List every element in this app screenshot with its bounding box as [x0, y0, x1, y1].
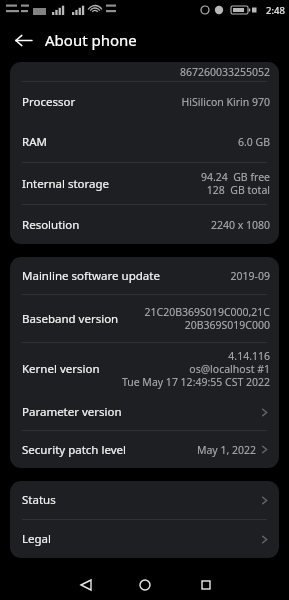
- button[interactable]: Kernel version: [10, 343, 279, 394]
- button[interactable]: Back: [73, 572, 99, 598]
- staticText: 94.24 GB free 128 GB total: [200, 170, 270, 197]
- button[interactable]: Parameter version: [10, 394, 279, 430]
- staticText: 4.14.116 os@localhost #1 Tue May 17 12:4…: [121, 349, 270, 389]
- staticText: May 1, 2022: [196, 443, 256, 457]
- button[interactable]: Home: [132, 572, 158, 598]
- staticText: 2240 x 1080: [210, 218, 270, 232]
- staticText: 6.0 GB: [237, 135, 270, 149]
- button[interactable]: 867260033255052: [10, 62, 279, 81]
- staticText: 21C20B369S019C000,21C 20B369S019C000: [144, 305, 270, 332]
- button[interactable]: Internal storage: [10, 163, 279, 204]
- staticText: Processor: [22, 94, 76, 110]
- staticText: Resolution: [22, 217, 80, 233]
- button[interactable]: Recents: [193, 572, 219, 598]
- staticText: RAM: [22, 134, 47, 150]
- staticText: Status: [22, 492, 56, 508]
- button[interactable]: Resolution: [10, 205, 279, 244]
- button[interactable]: Security patch level: [10, 431, 279, 468]
- staticText: 2019-09: [230, 269, 270, 283]
- staticText: 867260033255052: [179, 65, 270, 79]
- button[interactable]: Legal: [10, 520, 279, 558]
- staticText: Parameter version: [22, 404, 122, 420]
- staticText: Internal storage: [22, 176, 110, 192]
- button[interactable]: Back: [8, 25, 38, 55]
- staticText: About phone: [45, 30, 137, 50]
- button[interactable]: Mainline software update: [10, 257, 279, 294]
- staticText: Mainline software update: [22, 268, 160, 284]
- staticText: 2:48: [266, 4, 285, 17]
- button[interactable]: Processor: [10, 82, 279, 122]
- button[interactable]: RAM: [10, 122, 279, 162]
- button[interactable]: Status: [10, 481, 279, 519]
- staticText: Kernel version: [22, 361, 100, 377]
- staticText: Security patch level: [22, 442, 126, 458]
- staticText: Legal: [22, 531, 52, 547]
- button[interactable]: Baseband version: [10, 295, 279, 342]
- staticText: HiSilicon Kirin 970: [181, 95, 270, 109]
- staticText: Baseband version: [22, 311, 119, 327]
